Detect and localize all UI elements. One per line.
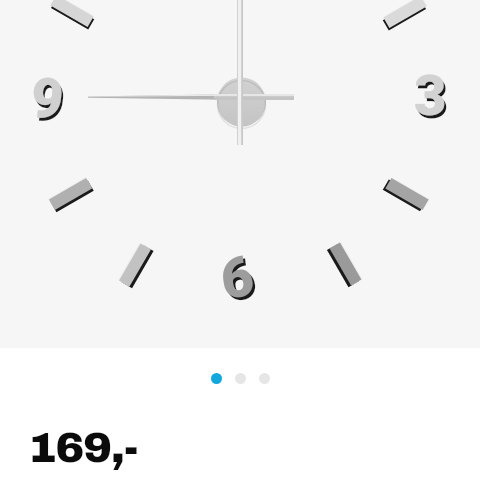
staticText: 9 xyxy=(29,68,69,137)
button[interactable]: Page 1 xyxy=(211,373,222,384)
button[interactable]: Page xyxy=(259,373,270,384)
button[interactable]: Product photo xyxy=(0,0,480,348)
staticText: 3 xyxy=(416,66,449,132)
staticText: 3 xyxy=(414,63,447,129)
staticText: 169,- xyxy=(28,424,138,471)
staticText: 9 xyxy=(28,64,67,134)
staticText: 6 xyxy=(217,243,258,313)
button[interactable]: Page xyxy=(235,373,246,384)
staticText: 6 xyxy=(219,246,261,316)
